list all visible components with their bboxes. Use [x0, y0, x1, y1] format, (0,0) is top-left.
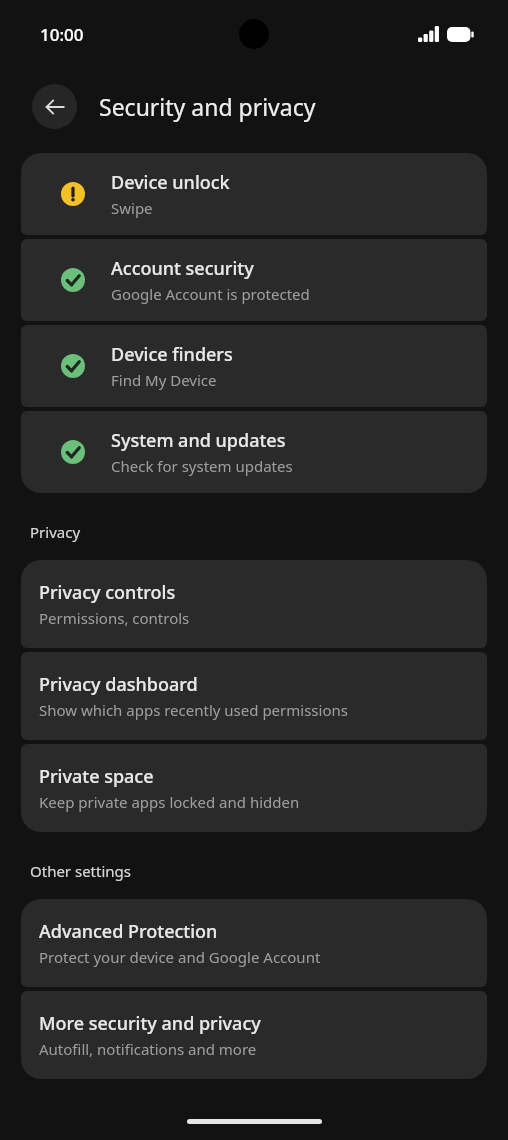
- staticText: Privacy dashboard: [39, 672, 198, 697]
- staticText: 10:00: [40, 23, 84, 46]
- staticText: More security and privacy: [39, 1011, 261, 1036]
- staticText: Protect your device and Google Account: [39, 947, 321, 967]
- staticText: Swipe: [111, 198, 153, 218]
- staticText: Keep private apps locked and hidden: [39, 792, 300, 812]
- staticText: Private space: [39, 764, 154, 789]
- staticText: Advanced Protection: [39, 919, 218, 944]
- button[interactable]: Account security: [21, 239, 487, 321]
- button[interactable]: System and updates: [21, 411, 487, 493]
- button[interactable]: Advanced Protection: [21, 899, 487, 987]
- button[interactable]: Device unlock: [21, 153, 487, 235]
- button[interactable]: Private space: [21, 744, 487, 832]
- staticText: Show which apps recently used permission…: [39, 700, 348, 720]
- staticText: Autofill, notifications and more: [39, 1039, 257, 1059]
- button[interactable]: Privacy dashboard: [21, 652, 487, 740]
- staticText: Permissions, controls: [39, 608, 190, 628]
- button[interactable]: Privacy controls: [21, 560, 487, 648]
- button[interactable]: Device finders: [21, 325, 487, 407]
- staticText: Google Account is protected: [111, 284, 310, 304]
- staticText: Other settings: [30, 861, 131, 881]
- staticText: Device finders: [111, 342, 233, 367]
- staticText: Device unlock: [111, 170, 230, 195]
- staticText: System and updates: [111, 428, 286, 453]
- staticText: Privacy: [30, 522, 81, 542]
- staticText: Privacy controls: [39, 580, 176, 605]
- staticText: Find My Device: [111, 370, 217, 390]
- staticText: Security and privacy: [99, 91, 316, 122]
- button[interactable]: Back: [32, 84, 77, 129]
- button[interactable]: More security and privacy: [21, 991, 487, 1079]
- staticText: Account security: [111, 256, 254, 281]
- staticText: Check for system updates: [111, 456, 293, 476]
